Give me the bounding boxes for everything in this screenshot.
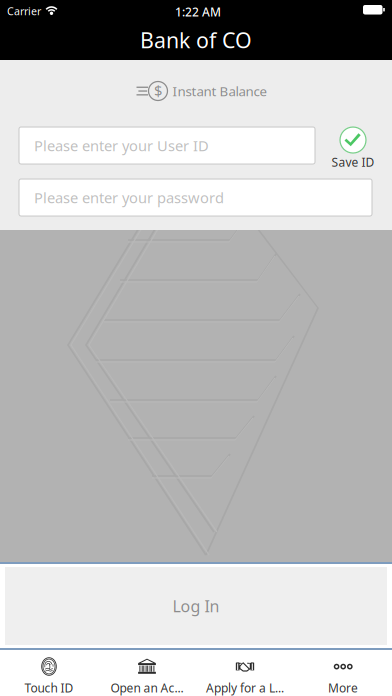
button[interactable]: Log In: [5, 567, 387, 645]
staticText: Carrier: [7, 4, 41, 18]
staticText: Please enter your password: [34, 188, 224, 207]
button[interactable]: Apply for a L...: [196, 650, 294, 696]
staticText: Touch ID: [24, 680, 73, 696]
staticText: Apply for a L...: [206, 680, 284, 696]
staticText: 1:22 AM: [175, 4, 221, 20]
staticText: Log In: [172, 595, 219, 617]
button[interactable]: Save ID: [324, 127, 382, 170]
button[interactable]: Touch ID: [0, 650, 98, 696]
staticText: More: [328, 680, 358, 696]
staticText: Instant Balance: [172, 82, 267, 100]
button[interactable]: Open an Ac...: [98, 650, 196, 696]
staticText: Please enter your User ID: [34, 136, 209, 155]
staticText: Bank of CO: [140, 26, 252, 54]
staticText: Open an Ac...: [110, 680, 183, 696]
button[interactable]: More: [294, 650, 392, 696]
staticText: Save ID: [331, 154, 374, 170]
button[interactable]: $: [127, 80, 277, 102]
staticText: $: [154, 81, 162, 100]
